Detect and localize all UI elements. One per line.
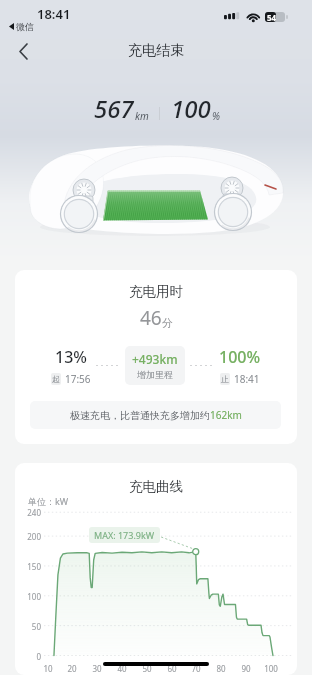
staticText: +493km — [132, 351, 178, 367]
staticText: 18:41 — [37, 5, 71, 23]
staticText: 18:41 — [234, 372, 260, 386]
staticText: 极速充电，比普通快充多增加约 — [70, 409, 210, 422]
staticText: 162km — [210, 408, 242, 422]
staticText: 0 — [26, 651, 41, 662]
staticText: 起 — [52, 374, 60, 384]
staticText: 50 — [138, 663, 156, 674]
staticText: 40 — [113, 663, 131, 674]
staticText: 90 — [237, 663, 255, 674]
staticText: 200 — [26, 531, 41, 542]
staticText: 150 — [26, 561, 41, 572]
staticText: 充电结束 — [128, 42, 184, 60]
staticText: 10 — [39, 663, 57, 674]
staticText: 充电用时 — [15, 283, 297, 300]
staticText: 100 — [262, 663, 280, 674]
staticText: 30 — [88, 663, 106, 674]
staticText: 100% — [219, 346, 261, 368]
staticText: km — [135, 109, 149, 123]
staticText: 止 — [221, 374, 229, 384]
staticText: 微信 — [16, 21, 34, 32]
staticText: 增加里程 — [137, 369, 173, 380]
staticText: 60 — [163, 663, 181, 674]
staticText: 13% — [55, 346, 87, 368]
staticText: 80 — [212, 663, 230, 674]
button[interactable]: Back — [8, 36, 38, 66]
staticText: 240 — [26, 507, 41, 518]
staticText: 50 — [26, 621, 41, 632]
staticText: % — [212, 109, 220, 123]
staticText: 54 — [267, 12, 277, 22]
staticText: 20 — [63, 663, 81, 674]
staticText: MAX: 173.9kW — [94, 529, 155, 541]
staticText: 17:56 — [65, 372, 91, 386]
staticText: 46 — [140, 305, 162, 331]
staticText: 70 — [187, 663, 205, 674]
staticText: 充电曲线 — [15, 478, 297, 495]
staticText: 567 — [94, 92, 134, 125]
staticText: 单位：kW — [28, 495, 69, 507]
staticText: 100 — [171, 92, 211, 125]
staticText: 100 — [26, 591, 41, 602]
staticText: 分 — [162, 316, 173, 330]
